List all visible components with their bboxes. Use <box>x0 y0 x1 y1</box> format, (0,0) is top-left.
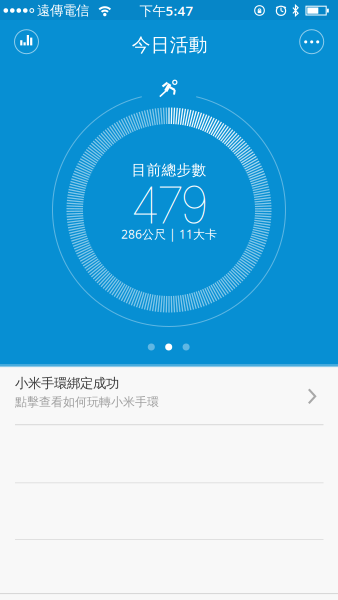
button[interactable]: 統計 <box>14 29 39 54</box>
staticText: 下午5:47 <box>140 2 194 19</box>
staticText: 遠傳電信 <box>37 2 89 19</box>
staticText: 479 <box>130 174 209 236</box>
staticText: 點擊查看如何玩轉小米手環 <box>15 395 159 409</box>
button[interactable]: 更多 <box>299 29 324 54</box>
button[interactable]: 小米手環綁定成功 <box>0 367 338 424</box>
staticText: 286公尺 | 11大卡 <box>121 226 217 242</box>
staticText: 小米手環綁定成功 <box>15 375 119 392</box>
staticText: 目前總步數 <box>131 161 206 179</box>
staticText: 今日活動 <box>132 33 208 56</box>
